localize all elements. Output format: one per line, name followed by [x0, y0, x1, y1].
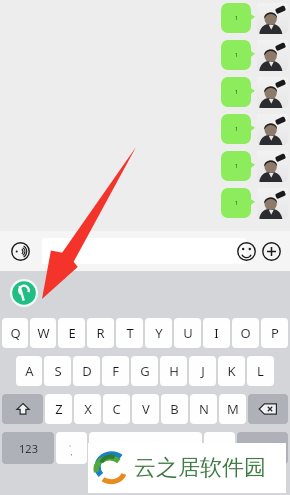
staticText: Q — [10, 324, 21, 342]
button[interactable]: G — [131, 356, 158, 386]
staticText: 1 — [235, 15, 238, 22]
button[interactable] — [204, 432, 235, 464]
staticText: C — [112, 400, 121, 418]
staticText: 1 — [235, 52, 238, 59]
button[interactable]: 1 — [221, 77, 255, 107]
staticText: B — [170, 400, 179, 418]
button[interactable]: M — [219, 394, 246, 424]
button[interactable]: Backspace — [248, 394, 288, 424]
button[interactable]: C — [103, 394, 130, 424]
button[interactable]: Translate plugin — [10, 279, 38, 307]
staticText: Y — [155, 324, 163, 342]
button[interactable] — [89, 432, 202, 464]
staticText: E — [68, 324, 76, 342]
staticText: J — [201, 362, 205, 380]
staticText: X — [84, 400, 92, 418]
button[interactable]: Contact avatar — [257, 40, 288, 71]
staticText: A — [25, 362, 34, 380]
staticText: 。 — [69, 440, 75, 448]
staticText: 1 — [235, 163, 238, 170]
button[interactable]: V — [132, 394, 159, 424]
button[interactable]: Shift — [2, 394, 43, 424]
staticText: P — [271, 324, 279, 342]
button[interactable]: R — [87, 318, 114, 348]
button[interactable]: T — [116, 318, 143, 348]
button[interactable]: S — [44, 356, 71, 386]
button[interactable]: Send — [237, 432, 288, 464]
button[interactable]: E — [58, 318, 85, 348]
button[interactable]: Y — [145, 318, 172, 348]
staticText: 123 — [19, 441, 38, 456]
button[interactable]: H — [160, 356, 187, 386]
button[interactable]: N — [190, 394, 217, 424]
staticText: D — [82, 362, 92, 380]
button[interactable]: 1 — [221, 3, 255, 33]
button[interactable]: More — [259, 239, 283, 263]
staticText: R — [96, 324, 105, 342]
button[interactable]: B — [161, 394, 188, 424]
staticText: O — [240, 324, 251, 342]
staticText: T — [126, 324, 134, 342]
button[interactable]: Contact avatar — [257, 3, 288, 34]
button[interactable]: O — [232, 318, 259, 348]
button[interactable]: 1 — [221, 188, 255, 218]
button[interactable]: K — [218, 356, 245, 386]
button[interactable]: Contact avatar — [257, 114, 288, 145]
button[interactable] — [42, 238, 246, 264]
staticText: 云之居软件园 — [134, 454, 266, 482]
staticText: 1 — [235, 89, 238, 96]
staticText: 1 — [235, 126, 238, 133]
staticText: N — [199, 400, 209, 418]
button[interactable]: Contact avatar — [257, 77, 288, 108]
button[interactable]: U — [174, 318, 201, 348]
button[interactable]: D — [73, 356, 100, 386]
staticText: W — [37, 324, 50, 342]
staticText: I — [214, 324, 219, 342]
button[interactable]: A — [16, 356, 42, 386]
button[interactable]: Contact avatar — [257, 188, 288, 219]
button[interactable]: Z — [45, 394, 72, 424]
staticText: Z — [55, 400, 63, 418]
staticText: V — [142, 400, 150, 418]
button[interactable]: I — [203, 318, 230, 348]
staticText: 1 — [235, 200, 238, 207]
button[interactable]: J — [189, 356, 216, 386]
button[interactable]: X — [74, 394, 101, 424]
staticText: M — [227, 400, 239, 418]
button[interactable]: 123 — [2, 432, 54, 464]
staticText: S — [54, 362, 62, 380]
button[interactable]: Contact avatar — [257, 151, 288, 182]
button[interactable]: 1 — [221, 114, 255, 144]
staticText: H — [169, 362, 179, 380]
staticText: F — [112, 362, 119, 380]
button[interactable]: 1 — [221, 151, 255, 181]
button[interactable]: 1 — [221, 40, 255, 70]
staticText: L — [257, 362, 264, 380]
staticText: G — [140, 362, 150, 380]
staticText: K — [227, 362, 236, 380]
staticText: ， — [68, 448, 75, 457]
staticText: U — [183, 324, 193, 342]
button[interactable]: Voice input — [8, 239, 32, 263]
button[interactable]: L — [247, 356, 274, 386]
button[interactable]: F — [102, 356, 129, 386]
button[interactable]: 。 — [56, 432, 87, 464]
button[interactable]: Q — [2, 318, 28, 348]
button[interactable]: W — [30, 318, 56, 348]
button[interactable]: Emoji — [234, 239, 258, 263]
button[interactable]: P — [261, 318, 288, 348]
